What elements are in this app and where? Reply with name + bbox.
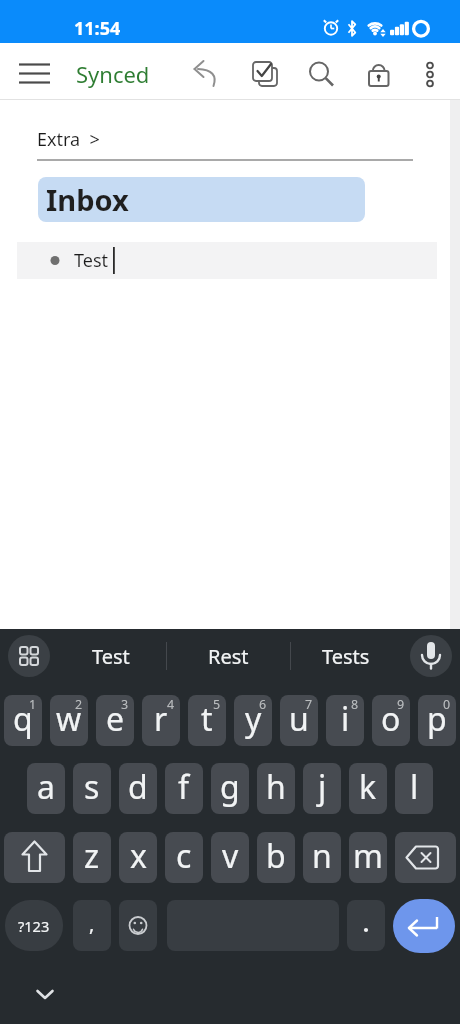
staticText: 4 [167,696,175,713]
button[interactable]: s [73,763,111,814]
button[interactable]: l [395,763,433,814]
button[interactable] [395,832,456,883]
button[interactable]: c [165,832,203,883]
button[interactable] [8,56,60,88]
button[interactable]: t [188,695,226,746]
button[interactable] [296,56,344,88]
staticText: , [89,910,95,937]
staticText: 2 [75,696,83,713]
staticText: d [128,765,148,809]
staticText: k [359,765,377,809]
staticText: l [410,765,419,809]
staticText: g [220,765,240,809]
button[interactable]: n [303,832,341,883]
staticText: Inbox [46,180,129,219]
button[interactable]: Synced [70,51,144,91]
button[interactable]: Rest [167,629,289,684]
staticText: c [176,834,192,878]
staticText: o [381,697,401,741]
staticText: s [84,765,100,809]
button[interactable]: Extra > [30,125,130,153]
button[interactable]: m [349,832,387,883]
button[interactable]: j [303,763,341,814]
button[interactable]: u [280,695,318,746]
staticText: q [13,697,33,741]
button[interactable]: h [257,763,295,814]
staticText: e [106,697,125,741]
button[interactable]: v [211,832,249,883]
staticText: i [341,697,350,741]
button[interactable]: , [73,900,111,951]
button[interactable] [240,56,288,88]
button[interactable] [408,56,452,88]
button[interactable]: o [372,695,410,746]
button[interactable] [410,635,452,677]
button[interactable]: y [234,695,272,746]
staticText: w [56,697,82,741]
button[interactable]: Inbox [38,177,365,222]
button[interactable]: x [119,832,157,883]
staticText: 11:54 [74,16,121,41]
button[interactable]: b [257,832,295,883]
staticText: a [37,765,55,809]
staticText: 7 [305,696,313,713]
staticText: Synced [76,59,150,89]
staticText: Tests [322,643,370,670]
button[interactable]: a [27,763,65,814]
staticText: 5 [213,696,221,713]
staticText: y [245,697,262,741]
button[interactable] [352,56,400,88]
button[interactable]: i [326,695,364,746]
staticText: j [318,765,327,809]
staticText: Rest [208,643,249,670]
button[interactable]: e [96,695,134,746]
button[interactable]: z [73,832,111,883]
staticText: Extra > [37,127,100,152]
staticText: 6 [259,696,267,713]
button[interactable] [184,56,232,88]
staticText: x [130,834,147,878]
staticText: ?123 [18,916,50,936]
staticText: b [266,834,286,878]
staticText: t [201,697,213,741]
staticText: 8 [351,696,359,713]
button[interactable] [119,900,157,951]
button[interactable]: r [142,695,180,746]
button[interactable]: Test [17,242,437,279]
button[interactable] [347,900,385,951]
button[interactable]: q [4,695,42,746]
button[interactable] [8,635,50,677]
staticText: n [312,834,332,878]
staticText: u [289,697,309,741]
button[interactable]: w [50,695,88,746]
button[interactable]: Test [56,629,166,684]
button[interactable]: g [211,763,249,814]
staticText: v [222,834,239,878]
staticText: 3 [121,696,129,713]
staticText: Test [92,643,130,670]
button[interactable] [393,899,455,953]
button[interactable]: Tests [291,629,401,684]
staticText: 0 [443,696,451,713]
staticText: r [154,697,168,741]
staticText: h [266,765,286,809]
button[interactable]: p [418,695,456,746]
button[interactable]: d [119,763,157,814]
button[interactable]: k [349,763,387,814]
staticText: f [178,765,190,809]
button[interactable]: ?123 [5,900,63,951]
staticText: p [427,697,447,741]
button[interactable] [4,832,65,883]
button[interactable]: f [165,763,203,814]
button[interactable] [25,979,65,1011]
staticText: Test [74,248,109,273]
staticText: 9 [397,696,405,713]
staticText: 1 [29,696,37,713]
staticText: z [84,834,100,878]
staticText: m [353,834,383,878]
